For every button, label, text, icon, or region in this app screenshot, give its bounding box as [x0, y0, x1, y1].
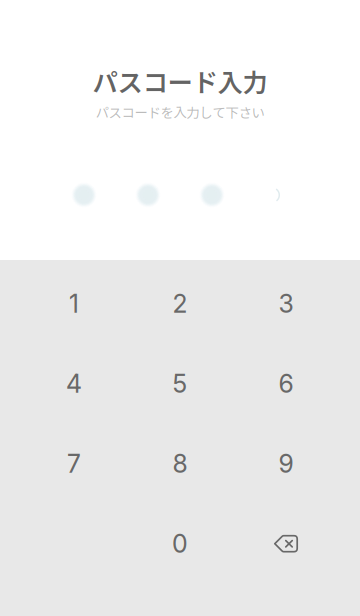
staticText: パスコードを入力して下さい [95, 102, 264, 122]
staticText: 0 [172, 529, 188, 559]
button[interactable]: 1 [21, 264, 127, 344]
staticText: 3 [278, 289, 293, 319]
button[interactable]: 0 [127, 504, 233, 584]
staticText: 9 [278, 449, 293, 479]
staticText: 2 [172, 289, 187, 319]
staticText: パスコード入力 [92, 63, 267, 99]
button[interactable]: 2 [127, 264, 233, 344]
staticText: 5 [172, 369, 187, 399]
staticText: 7 [67, 449, 81, 479]
staticText: 1 [69, 289, 79, 319]
button[interactable]: 9 [233, 424, 339, 504]
staticText: 8 [172, 449, 187, 479]
staticText: 6 [278, 369, 293, 399]
button[interactable]: 3 [233, 264, 339, 344]
button[interactable]: Delete [233, 504, 339, 584]
button[interactable]: 5 [127, 344, 233, 424]
button[interactable]: 7 [21, 424, 127, 504]
button[interactable]: 8 [127, 424, 233, 504]
button[interactable]: 6 [233, 344, 339, 424]
staticText: 4 [66, 369, 82, 399]
button[interactable]: 4 [21, 344, 127, 424]
